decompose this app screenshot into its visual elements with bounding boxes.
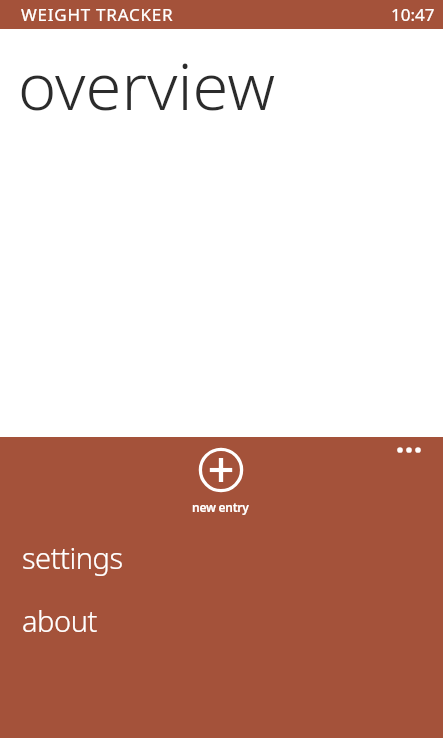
button[interactable]: new entry	[184, 437, 257, 515]
button[interactable]: More options	[391, 441, 427, 459]
staticText: about	[22, 601, 97, 640]
staticText: new entry	[192, 499, 249, 515]
button[interactable]: settings	[0, 534, 443, 581]
staticText: 10:47	[391, 3, 435, 26]
staticText: overview	[18, 41, 275, 130]
staticText: WEIGHT TRACKER	[21, 3, 174, 26]
staticText: settings	[22, 538, 123, 577]
button[interactable]: about	[0, 597, 443, 644]
